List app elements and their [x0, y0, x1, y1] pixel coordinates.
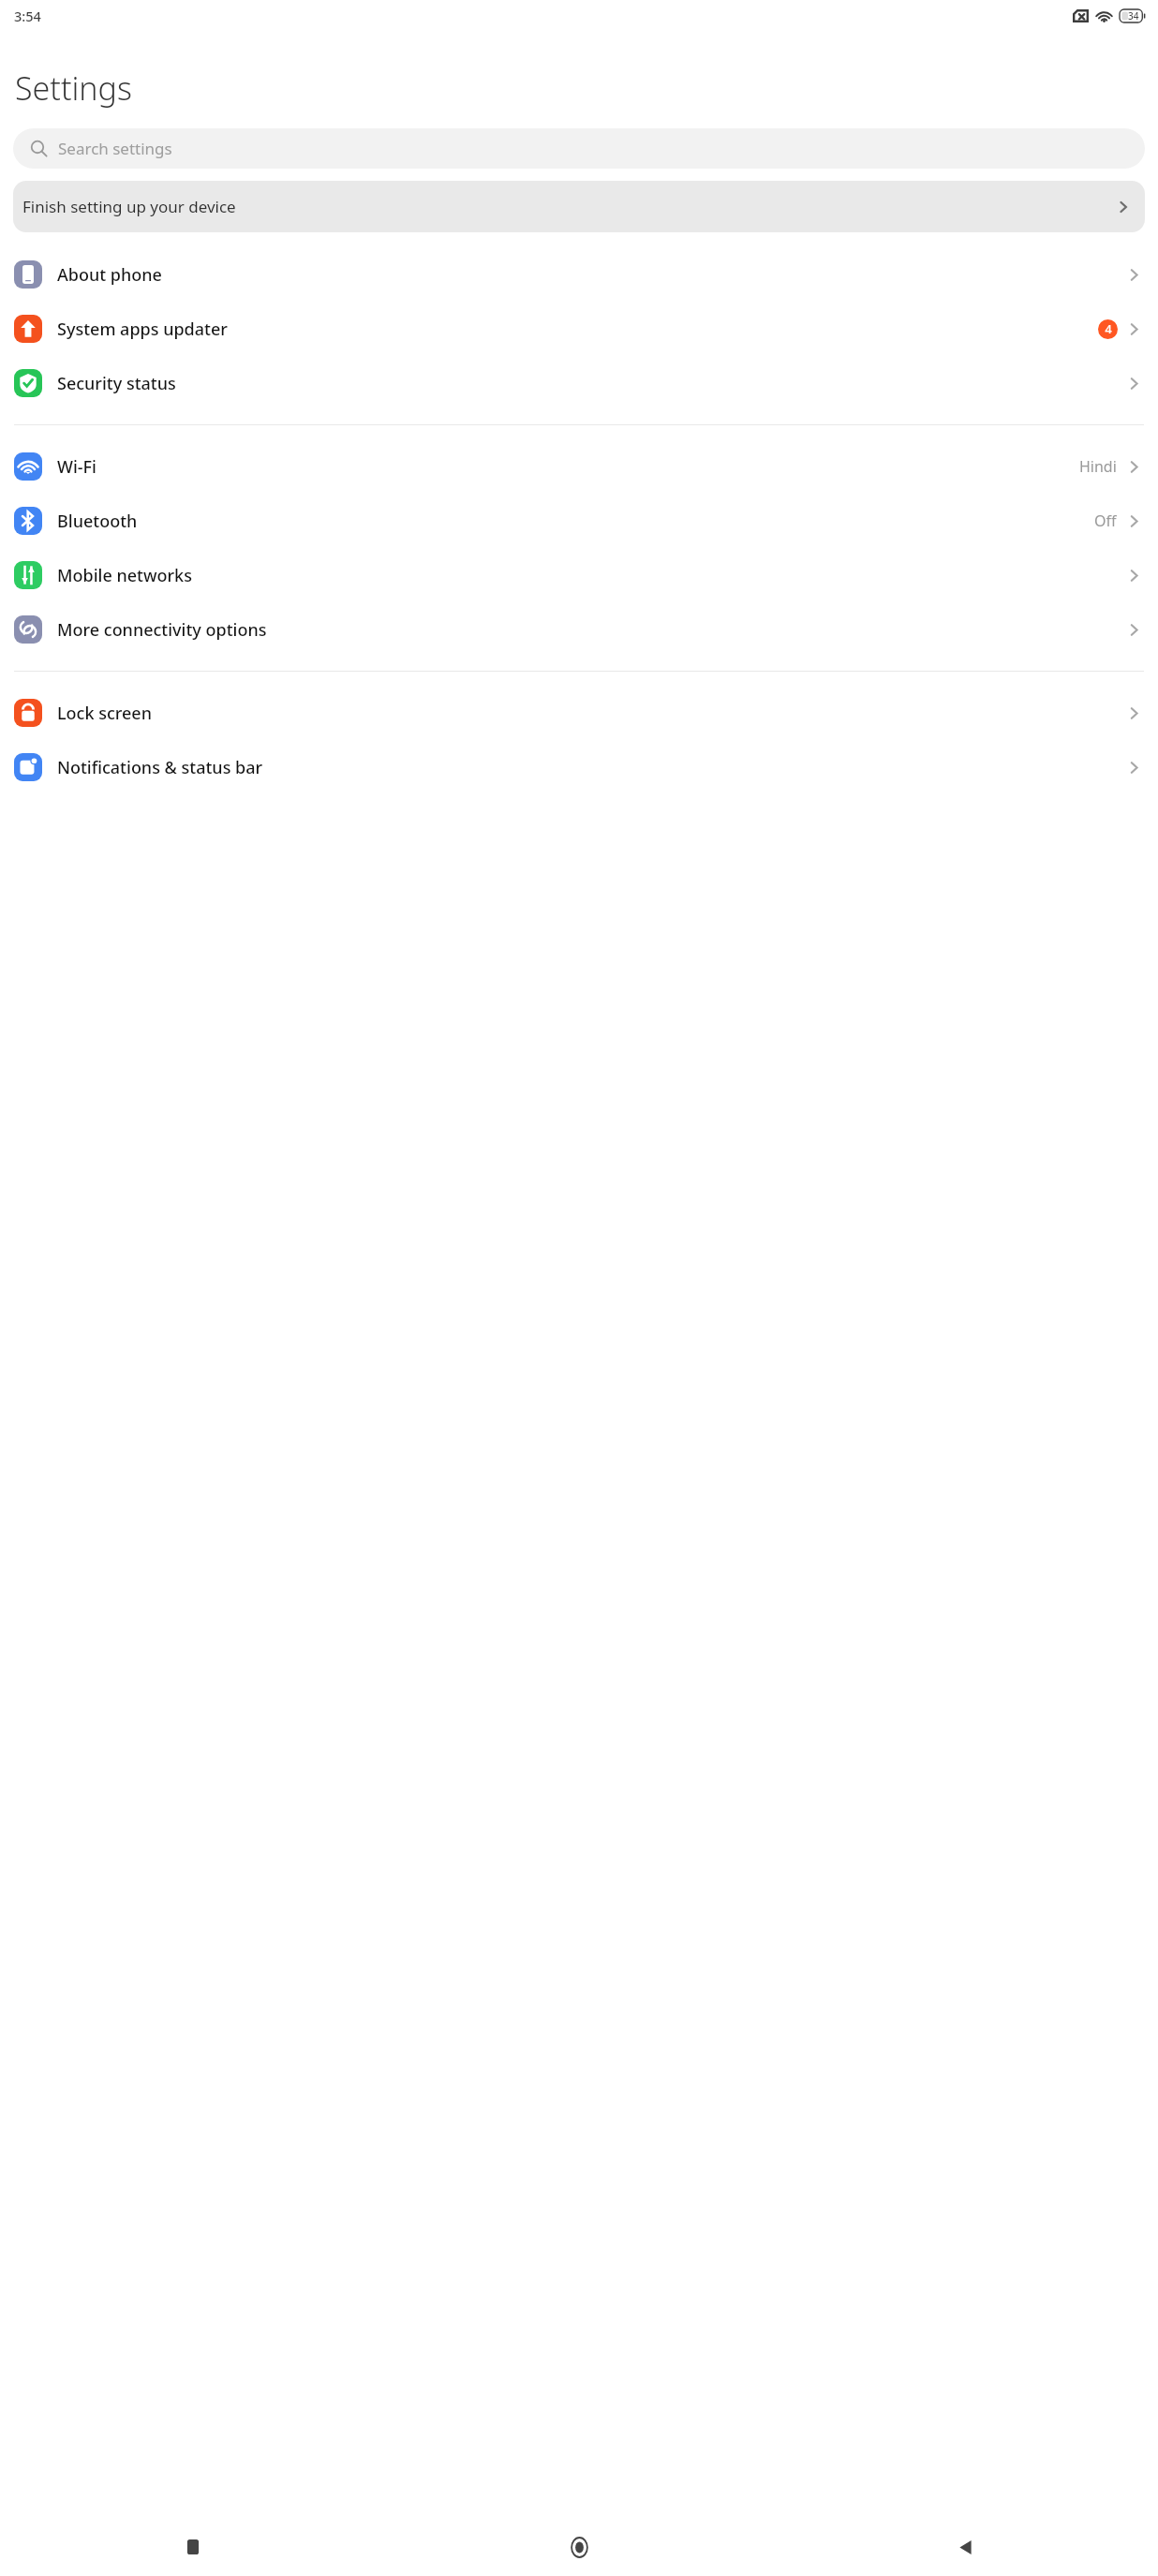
staticText: 4 [1105, 321, 1112, 337]
staticText: Settings [15, 67, 132, 110]
button[interactable]: Security status [0, 356, 1158, 410]
staticText: More connectivity options [57, 618, 1125, 642]
staticText: Finish setting up your device [22, 196, 1115, 217]
button[interactable]: Notifications & status bar [0, 740, 1158, 794]
button[interactable]: Lock screen [0, 686, 1158, 740]
staticText: About phone [57, 263, 1125, 287]
button[interactable]: Mobile networks [0, 548, 1158, 602]
staticText: Security status [57, 372, 1125, 395]
button[interactable]: System apps updater [0, 302, 1158, 356]
button[interactable]: Search settings [13, 128, 1145, 169]
staticText: Off [1094, 511, 1117, 531]
staticText: System apps updater [57, 318, 1098, 341]
button[interactable]: Recent apps [0, 2518, 386, 2576]
button[interactable]: Finish setting up your device [13, 181, 1145, 232]
staticText: 34 [1128, 9, 1139, 22]
staticText: Wi-Fi [57, 455, 1079, 479]
staticText: Mobile networks [57, 564, 1125, 587]
staticText: Bluetooth [57, 510, 1094, 533]
button[interactable]: Wi-Fi [0, 439, 1158, 494]
button[interactable]: Bluetooth [0, 494, 1158, 548]
button[interactable]: About phone [0, 247, 1158, 302]
staticText: 3:54 [14, 7, 41, 25]
staticText: Notifications & status bar [57, 756, 1125, 779]
staticText: Search settings [58, 138, 172, 159]
staticText: Lock screen [57, 702, 1125, 725]
button[interactable]: Back [772, 2518, 1158, 2576]
staticText: Hindi [1079, 456, 1117, 477]
button[interactable]: Home [386, 2518, 772, 2576]
button[interactable]: More connectivity options [0, 602, 1158, 657]
